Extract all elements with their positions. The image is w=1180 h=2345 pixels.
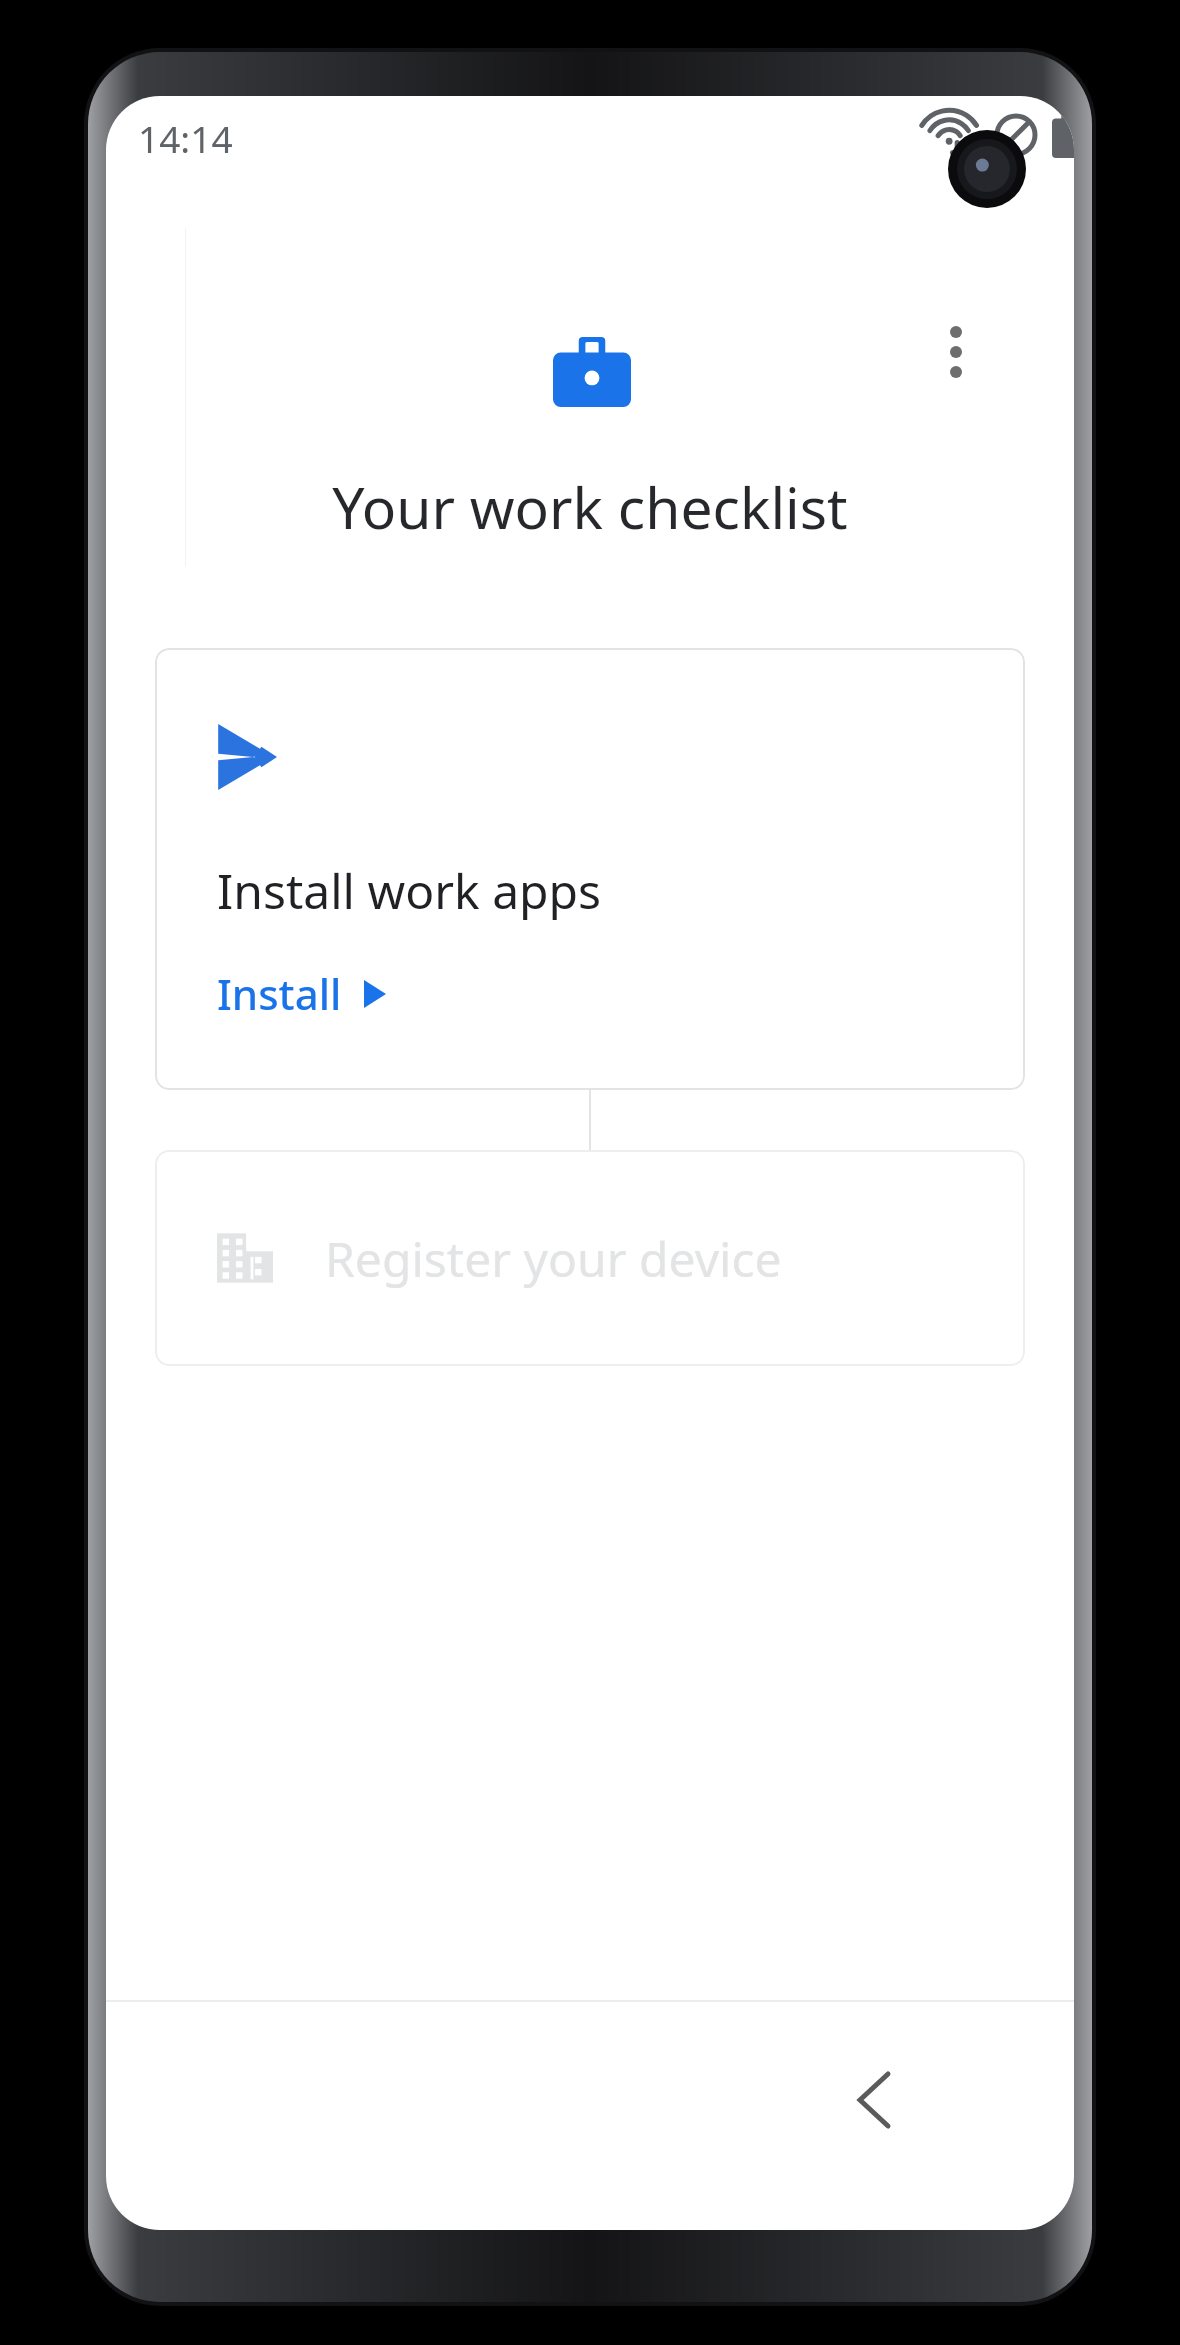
button[interactable]: Register your device xyxy=(155,1150,1025,1366)
other: Work profile xyxy=(548,328,636,416)
button[interactable]: Back xyxy=(822,2048,926,2152)
staticText: Install xyxy=(217,965,342,1022)
staticText: 14:14 xyxy=(138,113,233,163)
button[interactable]: More options xyxy=(908,304,1004,400)
staticText: Register your device xyxy=(325,1226,782,1291)
staticText: Your work checklist xyxy=(332,468,848,546)
staticText: Install work apps xyxy=(217,858,602,923)
button[interactable]: Install work apps xyxy=(155,648,1025,1090)
button[interactable]: Install xyxy=(217,965,386,1022)
